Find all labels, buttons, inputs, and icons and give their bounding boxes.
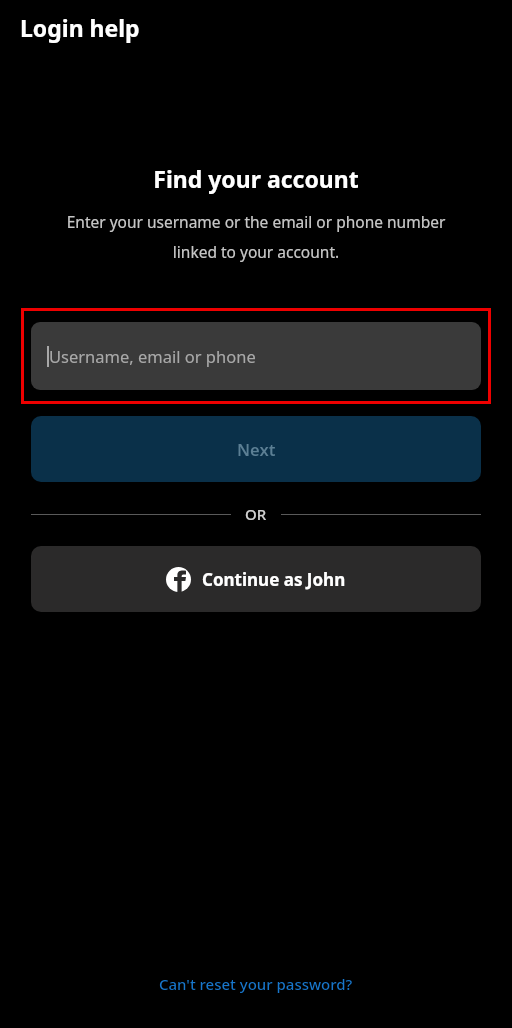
staticText: Find your account: [153, 163, 359, 194]
staticText: Login help: [20, 12, 140, 43]
button[interactable]: Next: [31, 416, 481, 482]
button[interactable]: Username, email or phone: [21, 308, 491, 404]
button[interactable]: Facebook: [31, 546, 481, 612]
staticText: Continue as John: [202, 568, 346, 591]
staticText: OR: [245, 504, 267, 524]
button[interactable]: Can't reset your password?: [147, 968, 365, 1000]
staticText: Can't reset your password?: [159, 974, 353, 994]
staticText: Username, email or phone: [49, 345, 256, 367]
staticText: Enter your username or the email or phon…: [55, 211, 457, 262]
other: Facebook: [166, 567, 191, 592]
staticText: Next: [237, 438, 276, 460]
